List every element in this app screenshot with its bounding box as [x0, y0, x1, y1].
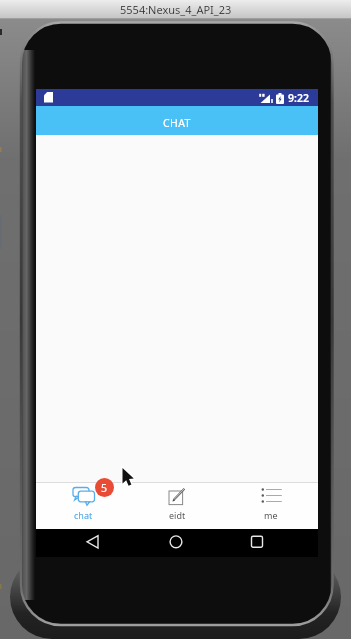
staticText: me	[264, 509, 278, 521]
staticText: 9:22	[288, 91, 309, 105]
button[interactable]	[130, 529, 224, 557]
button[interactable]: eidt	[130, 483, 224, 529]
staticText: 5	[101, 481, 108, 495]
staticText: eidt	[169, 509, 186, 521]
staticText: 5554:Nexus_4_API_23	[120, 2, 232, 17]
button[interactable]: me	[224, 483, 318, 529]
staticText: chat	[74, 509, 93, 521]
button[interactable]	[224, 529, 318, 557]
button[interactable]	[36, 529, 130, 557]
staticText: CHAT	[163, 116, 191, 130]
button[interactable]: chat	[36, 483, 130, 529]
